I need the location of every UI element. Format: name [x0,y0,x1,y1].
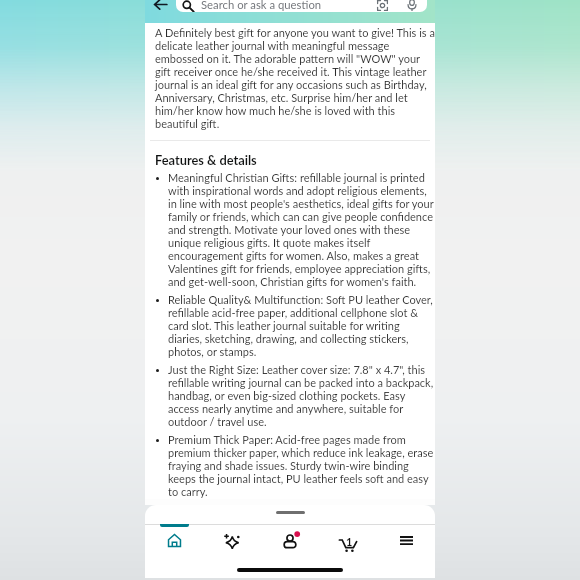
staticText: Reliable Quality& Multifunction: Soft PU… [168,293,434,358]
button[interactable]: Search or ask a question [176,0,427,12]
button[interactable]: Cart, 1 item [319,524,377,578]
button[interactable]: Home [145,524,203,578]
button[interactable]: Back [148,0,172,16]
button[interactable]: Menu [377,524,435,578]
staticText: Just the Right Size: Leather cover size:… [168,363,434,428]
staticText: A Definitely best gift for anyone you wa… [155,26,435,130]
button[interactable]: Search by camera [374,0,390,12]
button[interactable]: Rufus AI assistant [203,524,261,578]
staticText: Search or ask a question [201,0,322,12]
staticText: Premium Thick Paper: Acid-free pages mad… [168,433,434,498]
button[interactable]: Search by voice [404,0,420,12]
staticText: Features & details [155,152,257,167]
button[interactable]: Account [261,524,319,578]
staticText: 1 [346,535,353,548]
staticText: Meaningful Christian Gifts: refillable j… [168,171,434,288]
